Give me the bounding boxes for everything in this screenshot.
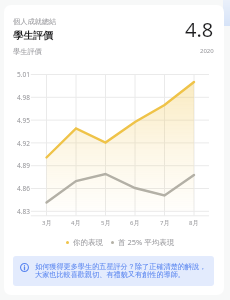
staticText: 3月 xyxy=(42,219,52,227)
staticText: 個人成就總結 xyxy=(13,17,57,26)
staticText: 6月 xyxy=(130,219,140,227)
staticText: 你的表現 xyxy=(73,238,103,247)
staticText: 5.01 xyxy=(17,70,30,79)
staticText: 學生評價 xyxy=(13,29,53,42)
staticText: 5月 xyxy=(101,219,111,227)
staticText: 4.89 xyxy=(17,161,30,170)
staticText: 4月 xyxy=(71,219,81,227)
staticText: 4.83 xyxy=(17,207,30,216)
staticText: 4.8 xyxy=(185,16,214,43)
staticText: 2020 xyxy=(200,47,214,55)
other: Information xyxy=(20,263,29,272)
staticText: 4.86 xyxy=(17,184,30,193)
staticText: 學生評價 xyxy=(13,47,42,56)
staticText: 4.92 xyxy=(17,139,30,148)
staticText: 4.95 xyxy=(17,116,30,125)
staticText: 8月 xyxy=(189,219,199,227)
staticText: 如何獲得更多學生的五星評分？除了正確清楚的解說， xyxy=(35,262,207,271)
staticText: 4.98 xyxy=(17,93,30,102)
staticText: 大家也比較喜歡親切、有禮貌又有創性的導師。 xyxy=(35,270,185,279)
staticText: 7月 xyxy=(160,219,170,227)
staticText: 首 25% 平均表現 xyxy=(118,237,175,247)
button[interactable]: Information xyxy=(13,256,214,286)
